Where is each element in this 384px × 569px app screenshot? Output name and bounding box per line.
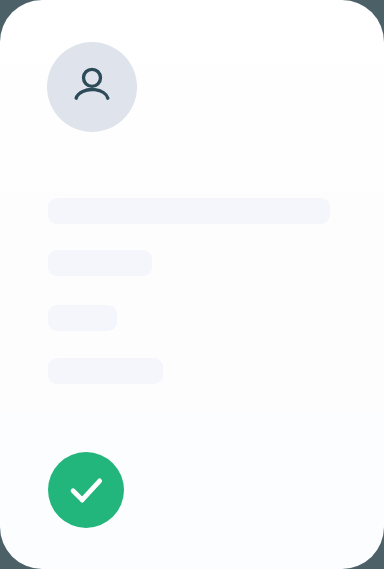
button[interactable]: Confirm (48, 452, 124, 528)
button[interactable]: Profile (47, 42, 137, 132)
